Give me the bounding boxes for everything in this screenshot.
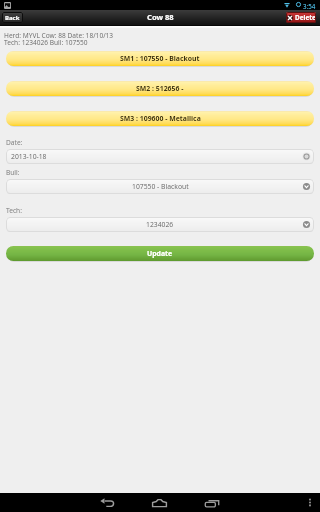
staticText: Delete	[295, 13, 316, 22]
staticText: Date:	[6, 138, 23, 147]
button[interactable]: SM3 : 109600 - Metallica	[6, 111, 314, 126]
button[interactable]: 2013-10-18	[6, 149, 314, 164]
staticText: Herd: MYVL Cow: 88 Date: 18/10/13	[4, 31, 114, 40]
button[interactable]: Back	[2, 12, 23, 23]
button[interactable]: More options	[303, 493, 317, 512]
staticText: 2013-10-18	[11, 152, 47, 161]
button[interactable]: Open picker	[302, 152, 311, 161]
button[interactable]: SM1 : 107550 - Blackout	[6, 51, 314, 66]
button[interactable]: Recent apps	[196, 493, 227, 512]
staticText: Update	[147, 249, 173, 258]
staticText: 3:54	[303, 2, 316, 10]
staticText: Bull:	[6, 168, 20, 177]
button[interactable]: 107550 - Blackout	[6, 179, 314, 194]
staticText: 107550 - Blackout	[132, 182, 189, 191]
staticText: 1234026	[146, 220, 174, 229]
staticText: SM3 : 109600 - Metallica	[120, 114, 201, 123]
button[interactable]: SM2 : 512656 -	[6, 81, 314, 96]
staticText: SM1 : 107550 - Blackout	[120, 54, 200, 63]
button[interactable]: Delete	[286, 12, 316, 23]
button[interactable]: Update	[6, 246, 314, 261]
staticText: SM2 : 512656 -	[136, 84, 184, 93]
staticText: Back	[5, 14, 20, 22]
button[interactable]: Open picker	[302, 220, 311, 229]
staticText: Tech:	[6, 206, 22, 215]
staticText: Tech: 1234026 Bull: 107550	[4, 38, 88, 47]
button[interactable]: Back	[92, 493, 123, 512]
button[interactable]: 1234026	[6, 217, 314, 232]
button[interactable]: Home	[144, 493, 175, 512]
button[interactable]: Open picker	[302, 182, 311, 191]
staticText: Cow 88	[147, 12, 174, 22]
